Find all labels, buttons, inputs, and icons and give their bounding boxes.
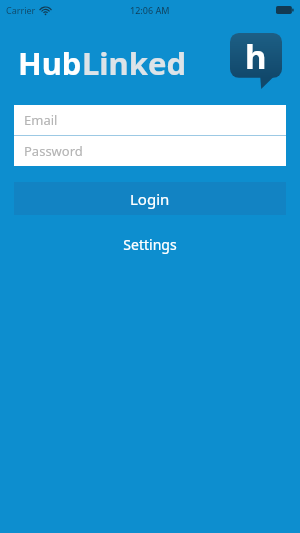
button[interactable]: Email (14, 105, 286, 135)
button[interactable]: Login (14, 182, 286, 215)
staticText: Password (24, 142, 83, 160)
staticText: 12:06 AM (130, 4, 170, 16)
staticText: Carrier (6, 4, 36, 16)
button[interactable]: Settings (0, 231, 300, 257)
staticText: Login (130, 189, 170, 209)
staticText: Email (24, 111, 58, 129)
button[interactable]: Password (14, 136, 286, 166)
staticText: Linked (82, 42, 187, 84)
staticText: h (245, 34, 267, 79)
staticText: Settings (123, 235, 177, 254)
staticText: Hub (18, 42, 82, 84)
